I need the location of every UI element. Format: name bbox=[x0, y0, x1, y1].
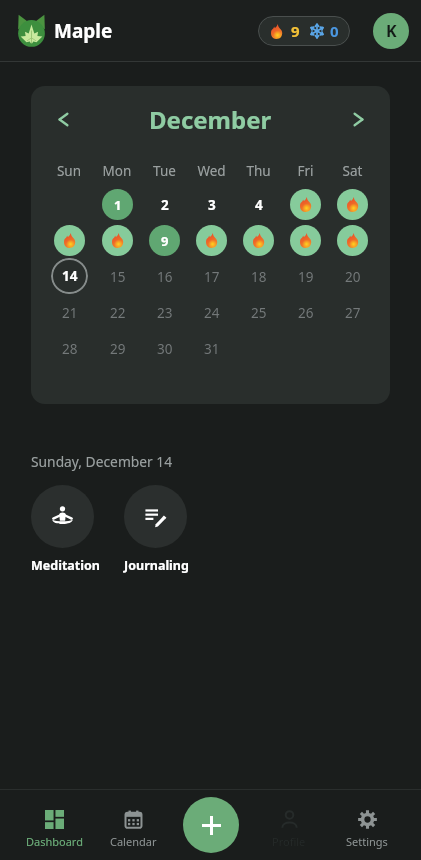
button[interactable]: 14 bbox=[51, 258, 88, 294]
staticText: 18 bbox=[251, 268, 267, 286]
button[interactable]: December 7 completed bbox=[54, 225, 85, 256]
staticText: 16 bbox=[157, 268, 173, 286]
button[interactable]: 2 bbox=[149, 189, 180, 220]
staticText: 24 bbox=[204, 304, 220, 322]
staticText: Maple bbox=[54, 18, 113, 44]
staticText: 20 bbox=[345, 268, 361, 286]
staticText: 25 bbox=[251, 304, 267, 322]
staticText: 23 bbox=[157, 304, 173, 322]
staticText: Calendar bbox=[110, 834, 157, 849]
staticText: 14 bbox=[62, 267, 78, 285]
button[interactable]: 4 bbox=[243, 189, 274, 220]
button[interactable]: 28 bbox=[54, 333, 85, 364]
staticText: Settings bbox=[346, 834, 388, 849]
staticText: Sat bbox=[329, 162, 376, 180]
button[interactable]: 24 bbox=[196, 297, 227, 328]
button[interactable]: 15 bbox=[102, 261, 133, 292]
staticText: Thu bbox=[235, 162, 282, 180]
button[interactable]: Calendar bbox=[94, 794, 172, 860]
staticText: 29 bbox=[110, 340, 126, 358]
button[interactable]: 26 bbox=[290, 297, 321, 328]
staticText: 4 bbox=[255, 196, 263, 214]
button[interactable]: 9 bbox=[258, 16, 350, 46]
staticText: 26 bbox=[298, 304, 314, 322]
button[interactable]: Next month bbox=[342, 103, 374, 135]
staticText: 9 bbox=[291, 21, 300, 41]
button[interactable]: 31 bbox=[196, 333, 227, 364]
button[interactable]: December 11 completed bbox=[243, 225, 274, 256]
staticText: 0 bbox=[330, 21, 339, 41]
button[interactable]: Journaling bbox=[124, 485, 187, 575]
button[interactable]: 1 bbox=[102, 189, 133, 220]
staticText: Tue bbox=[141, 162, 188, 180]
button[interactable]: December 13 completed bbox=[337, 225, 368, 256]
button[interactable]: December 10 completed bbox=[196, 225, 227, 256]
button[interactable]: 20 bbox=[337, 261, 368, 292]
staticText: Sunday, December 14 bbox=[31, 452, 173, 471]
button[interactable]: 23 bbox=[149, 297, 180, 328]
button[interactable]: December 6 completed bbox=[337, 189, 368, 220]
staticText: 15 bbox=[110, 268, 126, 286]
staticText: 27 bbox=[345, 304, 361, 322]
button[interactable]: 29 bbox=[102, 333, 133, 364]
button[interactable]: 22 bbox=[102, 297, 133, 328]
button[interactable]: Settings bbox=[328, 794, 406, 860]
button[interactable]: Maple logo bbox=[14, 14, 48, 48]
button[interactable]: 30 bbox=[149, 333, 180, 364]
button[interactable]: December 8 completed bbox=[102, 225, 133, 256]
staticText: Meditation bbox=[31, 557, 94, 574]
button[interactable]: Previous month bbox=[47, 103, 79, 135]
button[interactable]: 25 bbox=[243, 297, 274, 328]
staticText: 19 bbox=[298, 268, 314, 286]
staticText: 28 bbox=[62, 340, 78, 358]
staticText: December bbox=[149, 103, 272, 136]
button[interactable]: December 5 completed bbox=[290, 189, 321, 220]
staticText: Sun bbox=[45, 162, 93, 180]
button[interactable]: 19 bbox=[290, 261, 321, 292]
button[interactable]: 27 bbox=[337, 297, 368, 328]
staticText: Dashboard bbox=[26, 834, 83, 849]
button[interactable]: Add habit bbox=[183, 797, 239, 853]
button[interactable]: 21 bbox=[54, 297, 85, 328]
staticText: Journaling bbox=[124, 557, 187, 574]
button[interactable]: Profile K bbox=[373, 13, 409, 49]
button[interactable]: Dashboard bbox=[15, 794, 94, 860]
staticText: Profile bbox=[272, 834, 306, 849]
staticText: 17 bbox=[204, 268, 220, 286]
staticText: 9 bbox=[161, 232, 169, 250]
button[interactable]: 9 bbox=[149, 225, 180, 256]
button[interactable]: December 12 completed bbox=[290, 225, 321, 256]
staticText: 1 bbox=[114, 196, 122, 214]
button[interactable]: 3 bbox=[196, 189, 227, 220]
button[interactable]: 18 bbox=[243, 261, 274, 292]
staticText: K bbox=[386, 20, 397, 42]
staticText: 21 bbox=[62, 304, 78, 322]
staticText: Mon bbox=[93, 162, 141, 180]
button[interactable]: 17 bbox=[196, 261, 227, 292]
button[interactable]: Meditation bbox=[31, 485, 94, 575]
staticText: 31 bbox=[204, 340, 220, 358]
staticText: 2 bbox=[161, 196, 169, 214]
staticText: 22 bbox=[110, 304, 126, 322]
staticText: 30 bbox=[157, 340, 173, 358]
button[interactable]: 16 bbox=[149, 261, 180, 292]
staticText: Wed bbox=[188, 162, 235, 180]
staticText: Fri bbox=[282, 162, 329, 180]
staticText: 3 bbox=[208, 196, 216, 214]
